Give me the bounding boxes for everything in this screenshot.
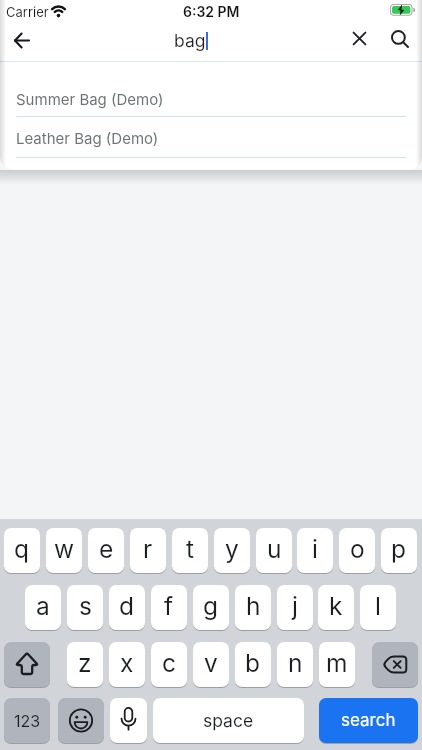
button[interactable]: g	[193, 585, 229, 630]
staticText: Leather Bag (Demo)	[16, 129, 159, 147]
button[interactable]	[319, 698, 418, 743]
button[interactable]: z	[67, 642, 103, 687]
button[interactable]: Leather Bag (Demo)	[0, 117, 422, 157]
button[interactable]	[110, 698, 147, 743]
staticText: h	[246, 591, 261, 621]
staticText: y	[225, 534, 239, 564]
staticText: q	[14, 534, 30, 564]
button[interactable]: v	[193, 642, 229, 687]
button[interactable]: r	[130, 528, 166, 573]
staticText: p	[391, 534, 407, 564]
button[interactable]	[4, 642, 50, 687]
staticText: l	[375, 591, 381, 621]
button[interactable]: x	[109, 642, 145, 687]
staticText: s	[79, 591, 92, 621]
staticText: Summer Bag (Demo)	[16, 90, 164, 108]
button[interactable]: d	[109, 585, 145, 630]
staticText: 123	[14, 711, 41, 730]
button[interactable]: c	[151, 642, 187, 687]
button[interactable]: y	[214, 528, 250, 573]
button[interactable]	[353, 32, 366, 45]
button[interactable]	[58, 698, 104, 743]
staticText: r	[143, 534, 153, 564]
staticText: bag	[174, 30, 206, 51]
button[interactable]: w	[46, 528, 82, 573]
staticText: j	[292, 591, 298, 621]
button[interactable]: f	[151, 585, 187, 630]
staticText: z	[78, 648, 92, 678]
staticText: space	[203, 710, 254, 731]
button[interactable]: q	[4, 528, 40, 573]
staticText: f	[164, 591, 174, 621]
staticText: u	[267, 534, 282, 564]
button[interactable]: b	[235, 642, 271, 687]
staticText: g	[203, 591, 219, 621]
staticText: w	[54, 534, 75, 564]
staticText: d	[119, 591, 135, 621]
button[interactable]: n	[277, 642, 313, 687]
staticText: search	[341, 710, 396, 731]
button[interactable]: a	[25, 585, 61, 630]
button[interactable]	[372, 642, 418, 687]
button[interactable]: space	[153, 698, 304, 743]
button[interactable]: t	[172, 528, 208, 573]
staticText: Carrier	[6, 4, 49, 20]
staticText: x	[120, 648, 134, 678]
staticText: v	[204, 648, 218, 678]
button[interactable]: o	[339, 528, 375, 573]
button[interactable]: l	[360, 585, 396, 630]
button[interactable]: e	[88, 528, 124, 573]
staticText: o	[350, 534, 365, 564]
button[interactable]	[14, 32, 30, 49]
button[interactable]: p	[381, 528, 417, 573]
staticText: a	[36, 591, 50, 621]
staticText: e	[99, 534, 114, 564]
staticText: b	[245, 648, 261, 678]
button[interactable]: 123	[4, 698, 50, 743]
staticText: t	[186, 534, 195, 564]
staticText: c	[162, 648, 176, 678]
staticText: n	[288, 648, 303, 678]
button[interactable]: u	[256, 528, 292, 573]
button[interactable]: m	[319, 642, 355, 687]
button[interactable]: h	[235, 585, 271, 630]
button[interactable]: i	[297, 528, 333, 573]
button[interactable]	[390, 29, 410, 49]
button[interactable]: k	[318, 585, 354, 630]
button[interactable]: Summer Bag (Demo)	[0, 62, 422, 117]
button[interactable]: j	[277, 585, 313, 630]
staticText: m	[326, 648, 348, 678]
button[interactable]: s	[67, 585, 103, 630]
staticText: i	[312, 534, 318, 564]
staticText: k	[329, 591, 343, 621]
staticText: 6:32 PM	[183, 3, 240, 20]
